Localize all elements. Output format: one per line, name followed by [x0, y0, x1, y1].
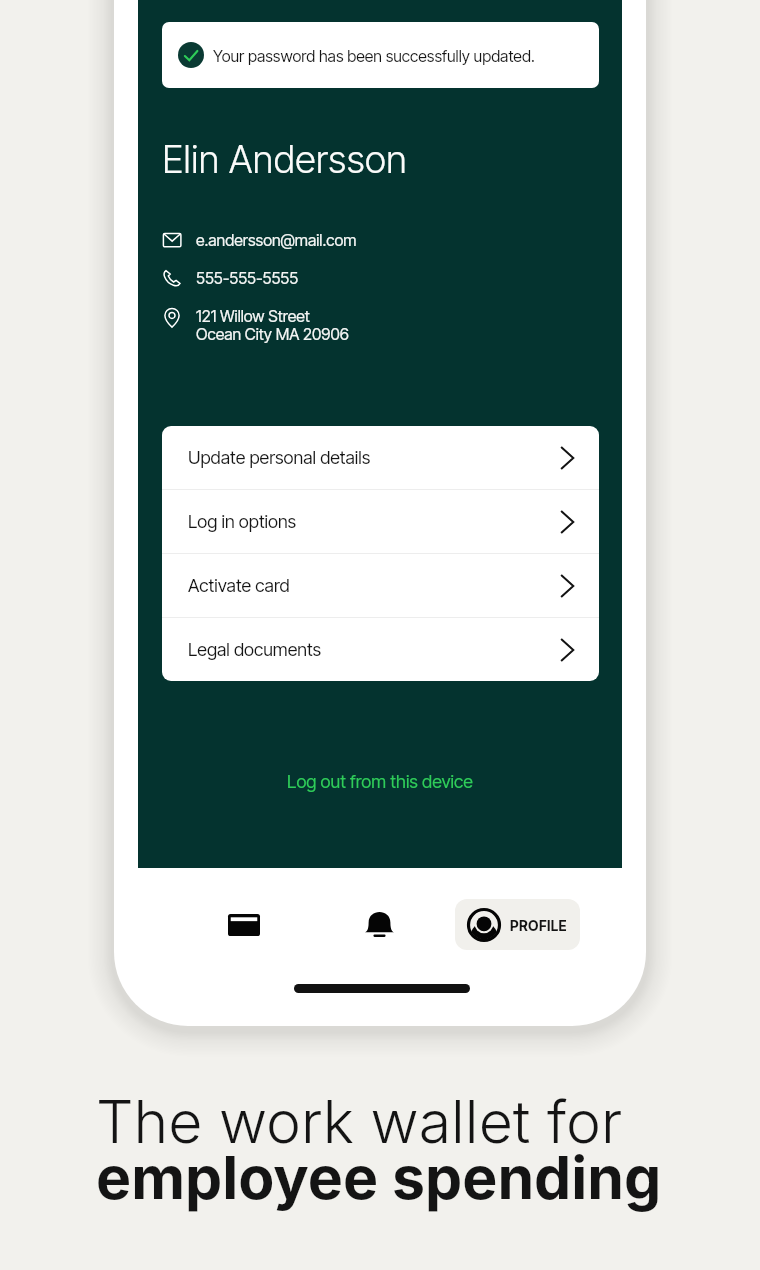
- button[interactable]: Cards: [212, 893, 276, 957]
- staticText: e.andersson@mail.com: [196, 230, 357, 249]
- staticText: Elin Andersson: [162, 136, 407, 182]
- button[interactable]: PROFILE: [455, 899, 580, 950]
- staticText: employee spending: [96, 1142, 662, 1213]
- staticText: Activate card: [188, 575, 290, 597]
- button[interactable]: Log in options: [162, 490, 599, 554]
- staticText: Log in options: [188, 511, 297, 533]
- button[interactable]: Activate card: [162, 554, 599, 618]
- staticText: Update personal details: [188, 447, 371, 469]
- button[interactable]: Legal documents: [162, 618, 599, 681]
- staticText: 555-555-5555: [196, 268, 299, 287]
- staticText: PROFILE: [510, 917, 568, 934]
- staticText: Legal documents: [188, 639, 322, 661]
- staticText: Your password has been successfully upda…: [213, 46, 535, 65]
- staticText: Log out from this device: [138, 771, 622, 793]
- button[interactable]: Log out from this device: [138, 760, 622, 800]
- staticText: 121 Willow Street Ocean City MA 20906: [196, 306, 349, 344]
- staticText: The work wallet for: [96, 1086, 623, 1157]
- button[interactable]: Update personal details: [162, 426, 599, 490]
- button[interactable]: Notifications: [347, 892, 411, 956]
